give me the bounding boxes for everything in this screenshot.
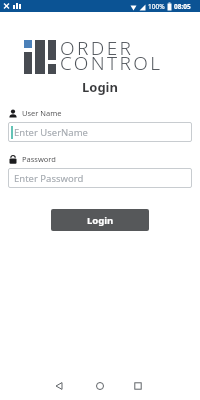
staticText: Password	[22, 154, 56, 164]
staticText: CONTROL	[60, 50, 163, 76]
button[interactable]: Enter Password	[8, 168, 192, 188]
staticText: Enter Password	[14, 172, 84, 185]
button[interactable]	[96, 382, 104, 390]
staticText: Login	[87, 214, 114, 227]
staticText: ORDER	[60, 35, 134, 61]
staticText: Enter UserName	[14, 126, 88, 139]
button[interactable]	[55, 382, 63, 390]
button[interactable]: Login	[51, 209, 149, 231]
staticText: User Name	[22, 108, 62, 118]
button[interactable]	[134, 382, 142, 390]
button[interactable]: Enter UserName	[8, 122, 192, 142]
staticText: Login	[82, 78, 118, 96]
staticText: 08:05	[174, 2, 191, 11]
staticText: 100%	[148, 2, 165, 11]
